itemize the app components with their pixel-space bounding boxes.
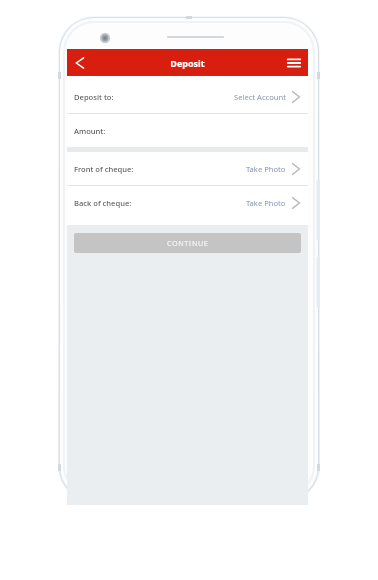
staticText: Take Photo (246, 198, 286, 208)
button[interactable]: Back (67, 51, 91, 75)
staticText: Back of cheque: (74, 198, 132, 208)
staticText: CONTINUE (167, 238, 209, 248)
staticText: Deposit to: (74, 92, 114, 102)
button[interactable]: Menu (282, 50, 308, 76)
button[interactable]: Deposit to: (67, 80, 308, 113)
button[interactable]: Front of cheque: (67, 152, 308, 185)
staticText: Front of cheque: (74, 164, 134, 174)
button[interactable]: Amount: (67, 114, 308, 147)
staticText: Select Account (234, 92, 286, 102)
staticText: Take Photo (246, 164, 286, 174)
button[interactable]: CONTINUE (74, 233, 301, 253)
button[interactable]: Back of cheque: (67, 186, 308, 219)
staticText: Deposit (170, 57, 205, 69)
staticText: Amount: (74, 126, 106, 136)
